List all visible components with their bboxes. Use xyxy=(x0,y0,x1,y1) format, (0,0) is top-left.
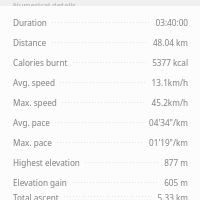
button[interactable]: Elevation gain xyxy=(0,172,200,192)
staticText: 04'34"/km xyxy=(149,117,188,128)
staticText: 877 m xyxy=(164,157,188,168)
staticText: 13.1km/h xyxy=(151,77,188,88)
button[interactable]: Avg. speed xyxy=(0,72,200,92)
staticText: 01'19"/km xyxy=(149,137,188,148)
staticText: Total ascent xyxy=(13,192,59,200)
staticText: 605 m xyxy=(164,177,188,188)
staticText: Elevation gain xyxy=(13,177,67,188)
button[interactable]: Highest elevation xyxy=(0,152,200,172)
staticText: Avg. speed xyxy=(13,77,55,88)
button[interactable]: Max. pace xyxy=(0,132,200,152)
button[interactable]: Total ascent xyxy=(0,192,200,200)
staticText: Calories burnt xyxy=(13,57,68,68)
staticText: Numerical details xyxy=(13,0,76,6)
staticText: 5.33 km xyxy=(157,192,188,200)
staticText: 03:40:00 xyxy=(155,17,188,28)
staticText: Max. pace xyxy=(13,137,52,148)
staticText: 45.2km/h xyxy=(151,97,188,108)
staticText: 48.04 km xyxy=(152,37,188,48)
staticText: Highest elevation xyxy=(13,157,80,168)
staticText: Duration xyxy=(13,17,47,28)
staticText: Distance xyxy=(13,37,47,48)
button[interactable]: Avg. pace xyxy=(0,112,200,132)
button[interactable]: Duration xyxy=(0,12,200,32)
staticText: 5377 kcal xyxy=(152,57,188,68)
staticText: Max. speed xyxy=(13,97,57,108)
button[interactable]: Distance xyxy=(0,32,200,52)
button[interactable]: Calories burnt xyxy=(0,52,200,72)
button[interactable]: Max. speed xyxy=(0,92,200,112)
staticText: Avg. pace xyxy=(13,117,50,128)
